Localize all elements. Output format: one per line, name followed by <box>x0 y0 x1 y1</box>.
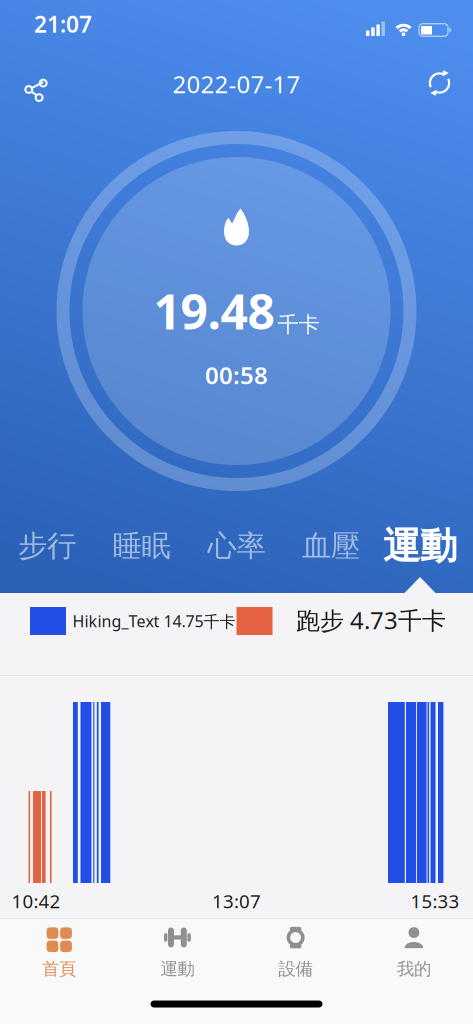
staticText: 2022-07-17 <box>172 68 300 100</box>
button[interactable]: 心率 <box>207 528 265 564</box>
staticText: 千卡 <box>277 312 319 338</box>
staticText: Hiking_Text 14.75千卡 <box>72 610 235 632</box>
staticText: 13:07 <box>212 889 261 913</box>
staticText: 00:58 <box>205 359 268 391</box>
staticText: 設備 <box>279 958 313 980</box>
staticText: 血壓 <box>302 528 360 564</box>
staticText: 10:42 <box>11 889 60 913</box>
staticText: 睡眠 <box>112 528 170 564</box>
button[interactable]: Share <box>18 69 48 99</box>
staticText: 心率 <box>207 528 265 564</box>
staticText: 15:33 <box>410 889 459 913</box>
button[interactable]: 設備 <box>279 926 313 980</box>
staticText: 19.48 <box>153 279 274 343</box>
button[interactable]: 首頁 <box>42 926 76 980</box>
staticText: 我的 <box>397 958 431 980</box>
button[interactable]: 步行 <box>18 528 76 564</box>
button[interactable]: Refresh <box>423 67 455 99</box>
staticText: 首頁 <box>42 958 76 980</box>
button[interactable]: 我的 <box>397 926 431 980</box>
staticText: 運動 <box>160 958 194 980</box>
button[interactable]: 運動 <box>160 926 194 980</box>
button[interactable]: 血壓 <box>302 528 360 564</box>
button[interactable]: 睡眠 <box>112 528 170 564</box>
staticText: 運動 <box>383 523 457 569</box>
staticText: 21:07 <box>34 9 92 39</box>
button[interactable]: 運動 <box>383 523 457 569</box>
staticText: 跑步 4.73千卡 <box>296 604 446 636</box>
staticText: 步行 <box>18 528 76 564</box>
